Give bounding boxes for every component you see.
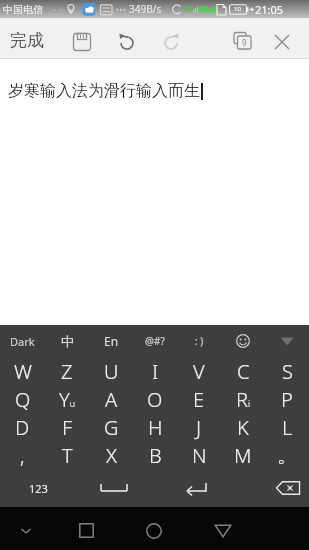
- staticText: E: [193, 386, 205, 413]
- button[interactable]: I: [133, 357, 177, 385]
- staticText: K: [237, 414, 249, 441]
- button[interactable]: H: [133, 413, 177, 441]
- button[interactable]: [156, 26, 188, 58]
- button[interactable]: ,: [0, 441, 45, 469]
- button[interactable]: En: [89, 325, 133, 357]
- button[interactable]: U: [89, 357, 133, 385]
- staticText: G: [104, 414, 119, 441]
- button[interactable]: Dark: [0, 325, 45, 357]
- staticText: F: [62, 414, 73, 441]
- staticText: Q: [15, 386, 31, 413]
- staticText: V: [193, 358, 205, 385]
- staticText: En: [104, 333, 119, 349]
- button[interactable]: O: [133, 385, 177, 413]
- button[interactable]: B: [133, 441, 177, 469]
- staticText: U: [104, 358, 119, 385]
- staticText: T: [62, 442, 73, 469]
- staticText: 21:05: [255, 2, 284, 17]
- staticText: ,: [20, 442, 25, 469]
- button[interactable]: X: [89, 441, 133, 469]
- button[interactable]: P: [265, 385, 309, 413]
- staticText: O: [147, 386, 163, 413]
- button[interactable]: L: [265, 413, 309, 441]
- staticText: 完成: [10, 30, 44, 51]
- button[interactable]: S: [265, 357, 309, 385]
- staticText: P: [281, 386, 293, 413]
- button[interactable]: : ): [177, 325, 221, 357]
- staticText: 123: [29, 481, 48, 496]
- button[interactable]: [110, 26, 142, 58]
- button[interactable]: T: [45, 441, 89, 469]
- staticText: 3G: [198, 3, 209, 14]
- button[interactable]: Z: [45, 357, 89, 385]
- staticText: 10: [234, 5, 241, 13]
- staticText: 3G: [183, 3, 194, 14]
- staticText: S: [282, 358, 293, 385]
- staticText: C: [237, 358, 250, 385]
- staticText: H: [148, 414, 163, 441]
- button[interactable]: D: [0, 413, 45, 441]
- button[interactable]: A: [89, 385, 133, 413]
- staticText: L: [282, 414, 293, 441]
- button[interactable]: 完成: [10, 30, 44, 51]
- staticText: Dark: [10, 334, 35, 349]
- button[interactable]: V: [177, 357, 221, 385]
- button[interactable]: Ri: [221, 385, 265, 413]
- staticText: Ri: [236, 386, 251, 413]
- staticText: I: [152, 358, 159, 385]
- button[interactable]: J: [177, 413, 221, 441]
- staticText: Yu: [59, 386, 76, 413]
- staticText: A: [105, 386, 118, 413]
- button[interactable]: F: [45, 413, 89, 441]
- staticText: : ): [195, 334, 204, 348]
- button[interactable]: G: [89, 413, 133, 441]
- button[interactable]: [169, 469, 225, 507]
- button[interactable]: E: [177, 385, 221, 413]
- button[interactable]: C: [221, 357, 265, 385]
- staticText: J: [196, 414, 202, 441]
- staticText: M: [234, 442, 252, 469]
- staticText: 中: [61, 333, 74, 349]
- button[interactable]: [66, 26, 98, 58]
- staticText: 9: [242, 37, 247, 48]
- staticText: @#?: [145, 334, 165, 348]
- button[interactable]: 。: [265, 441, 309, 469]
- button[interactable]: [205, 509, 241, 550]
- button[interactable]: 中: [45, 325, 89, 357]
- staticText: 。: [277, 443, 297, 468]
- button[interactable]: [136, 509, 172, 550]
- button[interactable]: 123: [20, 469, 56, 507]
- button[interactable]: M: [221, 441, 265, 469]
- button[interactable]: N: [177, 441, 221, 469]
- staticText: N: [192, 442, 207, 469]
- button[interactable]: K: [221, 413, 265, 441]
- button[interactable]: [86, 469, 142, 507]
- staticText: Z: [61, 358, 73, 385]
- staticText: D: [15, 414, 30, 441]
- button[interactable]: Yu: [45, 385, 89, 413]
- button[interactable]: Q: [0, 385, 45, 413]
- button[interactable]: [68, 509, 104, 550]
- staticText: W: [14, 358, 32, 385]
- staticText: 岁寒输入法为滑行输入而生: [8, 81, 200, 101]
- staticText: X: [106, 442, 117, 469]
- button[interactable]: [260, 469, 309, 507]
- button[interactable]: 9: [227, 26, 259, 58]
- staticText: 349B/s: [129, 2, 162, 16]
- button[interactable]: [265, 325, 309, 357]
- button[interactable]: W: [0, 357, 45, 385]
- staticText: B: [149, 442, 162, 469]
- button[interactable]: [221, 325, 265, 357]
- button[interactable]: [266, 26, 298, 58]
- button[interactable]: [14, 509, 38, 550]
- button[interactable]: @#?: [133, 325, 177, 357]
- staticText: 中国电信: [3, 3, 43, 16]
